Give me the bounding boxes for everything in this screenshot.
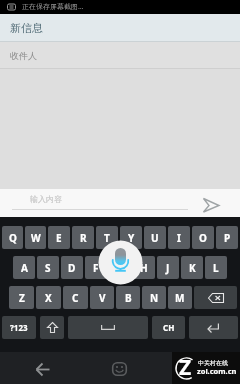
button[interactable]: T bbox=[96, 226, 118, 249]
staticText: L bbox=[213, 261, 219, 275]
button[interactable]: CH bbox=[152, 316, 185, 339]
button[interactable]: M bbox=[168, 286, 192, 309]
staticText: zol.com.cn bbox=[197, 366, 237, 376]
staticText: Z bbox=[19, 291, 25, 305]
staticText: P bbox=[224, 231, 231, 245]
staticText: O bbox=[199, 231, 207, 245]
button[interactable]: H bbox=[133, 256, 155, 279]
staticText: 新信息 bbox=[10, 21, 43, 35]
button[interactable]: D bbox=[61, 256, 83, 279]
staticText: B bbox=[125, 291, 132, 305]
staticText: A bbox=[21, 261, 28, 275]
button[interactable] bbox=[0, 189, 196, 217]
staticText: K bbox=[189, 261, 196, 275]
staticText: E bbox=[56, 231, 62, 245]
staticText: ?123 bbox=[10, 322, 28, 333]
button[interactable]: K bbox=[181, 256, 203, 279]
staticText: 输入内容 bbox=[30, 194, 62, 204]
button[interactable]: R bbox=[72, 226, 94, 249]
button[interactable]: I bbox=[168, 226, 190, 249]
button[interactable]: E bbox=[48, 226, 70, 249]
button[interactable] bbox=[206, 189, 240, 217]
button[interactable]: U bbox=[144, 226, 166, 249]
button[interactable]: Z bbox=[9, 286, 34, 309]
button[interactable]: L bbox=[205, 256, 227, 279]
button[interactable]: V bbox=[90, 286, 114, 309]
button[interactable]: Q bbox=[2, 226, 23, 249]
button[interactable] bbox=[100, 352, 140, 384]
button[interactable]: O bbox=[192, 226, 214, 249]
staticText: G bbox=[116, 261, 124, 275]
staticText: T bbox=[104, 231, 110, 245]
staticText: D bbox=[68, 261, 76, 275]
staticText: F bbox=[93, 261, 99, 275]
button[interactable]: N bbox=[142, 286, 166, 309]
staticText: S bbox=[45, 261, 51, 275]
staticText: 正在保存屏幕截图… bbox=[22, 2, 84, 12]
staticText: I bbox=[177, 231, 181, 245]
staticText: V bbox=[99, 291, 106, 305]
button[interactable]: X bbox=[36, 286, 61, 309]
button[interactable]: J bbox=[157, 256, 179, 279]
staticText: Q bbox=[9, 231, 17, 245]
button[interactable]: W bbox=[25, 226, 46, 249]
staticText: H bbox=[140, 261, 148, 275]
staticText: W bbox=[31, 231, 41, 245]
button[interactable]: C bbox=[63, 286, 88, 309]
staticText: Z bbox=[179, 353, 192, 382]
staticText: M bbox=[175, 291, 185, 305]
button[interactable] bbox=[68, 316, 148, 339]
button[interactable] bbox=[40, 316, 64, 339]
button[interactable]: F bbox=[85, 256, 107, 279]
staticText: R bbox=[80, 231, 87, 245]
staticText: Y bbox=[128, 231, 135, 245]
button[interactable] bbox=[19, 352, 67, 384]
button[interactable] bbox=[194, 286, 237, 309]
staticText: X bbox=[45, 291, 52, 305]
staticText: 中关村在线 bbox=[198, 359, 228, 367]
button[interactable]: P bbox=[216, 226, 238, 249]
staticText: C bbox=[72, 291, 79, 305]
button[interactable]: B bbox=[116, 286, 140, 309]
staticText: N bbox=[150, 291, 159, 305]
button[interactable] bbox=[189, 316, 238, 339]
button[interactable]: ?123 bbox=[2, 316, 36, 339]
button[interactable]: S bbox=[37, 256, 59, 279]
button[interactable]: Y bbox=[120, 226, 142, 249]
staticText: 收件人 bbox=[10, 50, 37, 61]
button[interactable]: 收件人 bbox=[0, 42, 240, 68]
staticText: CH bbox=[163, 322, 175, 333]
staticText: J bbox=[166, 261, 170, 275]
staticText: U bbox=[151, 231, 159, 245]
button[interactable]: A bbox=[13, 256, 35, 279]
button[interactable]: G bbox=[109, 256, 131, 279]
